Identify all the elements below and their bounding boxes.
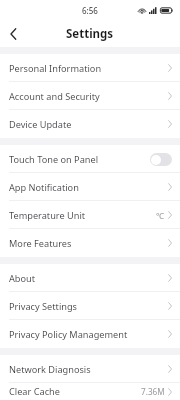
staticText: 6:56: [82, 5, 98, 16]
button[interactable]: Temperature Unit: [0, 201, 180, 229]
staticText: Device Update: [9, 118, 72, 131]
staticText: Settings: [66, 26, 114, 42]
button[interactable]: More Features: [0, 229, 180, 257]
staticText: Privacy Settings: [9, 300, 77, 313]
button[interactable]: Network Diagnosis: [0, 355, 180, 383]
staticText: Clear Cache: [9, 385, 60, 398]
button[interactable]: Touch Tone on Panel: [0, 145, 180, 173]
button[interactable]: Clear Cache: [0, 383, 180, 400]
button[interactable]: Privacy Settings: [0, 292, 180, 320]
staticText: App Notification: [9, 181, 79, 194]
staticText: Network Diagnosis: [9, 363, 91, 376]
button[interactable]: Account and Security: [0, 82, 180, 110]
button[interactable]: Privacy Policy Management: [0, 320, 180, 348]
button[interactable]: Back: [0, 21, 26, 47]
staticText: 7.36M: [141, 386, 165, 397]
staticText: Personal Information: [9, 62, 102, 75]
staticText: Temperature Unit: [9, 209, 86, 222]
staticText: Privacy Policy Management: [9, 328, 128, 341]
staticText: About: [9, 272, 36, 285]
staticText: More Features: [9, 237, 72, 250]
button[interactable]: Device Update: [0, 110, 180, 138]
staticText: Touch Tone on Panel: [9, 153, 99, 166]
button[interactable]: App Notification: [0, 173, 180, 201]
button[interactable]: About: [0, 264, 180, 292]
staticText: Account and Security: [9, 90, 100, 103]
staticText: ℃: [156, 210, 165, 221]
button[interactable]: Personal Information: [0, 54, 180, 82]
